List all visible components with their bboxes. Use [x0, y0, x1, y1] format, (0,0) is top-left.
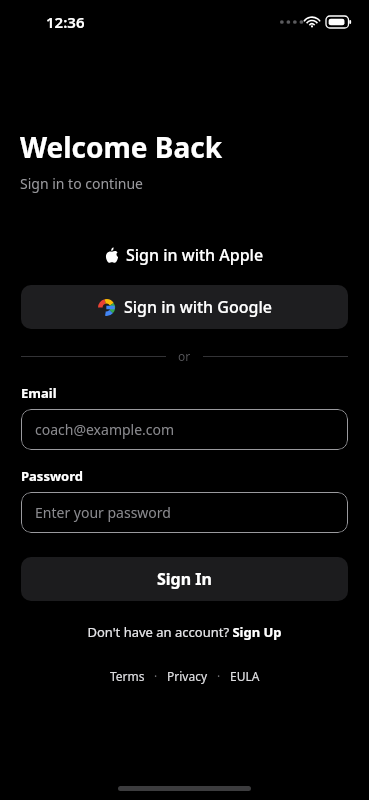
staticText: coach@example.com	[35, 420, 175, 439]
button[interactable]: Privacy	[165, 668, 210, 684]
button[interactable]: Enter your password	[21, 492, 348, 533]
staticText: Privacy	[167, 668, 208, 684]
staticText: Welcome Back	[20, 128, 223, 166]
staticText: Sign In	[157, 568, 212, 590]
button[interactable]: coach@example.com	[21, 409, 348, 450]
button[interactable]: Sign in with Google	[21, 285, 348, 329]
staticText: EULA	[230, 668, 260, 684]
staticText: Sign in with Apple	[126, 244, 264, 266]
button[interactable]: EULA	[228, 668, 262, 684]
staticText: Password	[21, 467, 83, 485]
staticText: Terms	[110, 668, 145, 684]
staticText: or	[178, 348, 191, 364]
button[interactable]: Sign In	[21, 557, 348, 601]
button[interactable]: Sign in with Apple	[21, 233, 348, 277]
button[interactable]: Don't have an account? Sign Up	[0, 623, 369, 641]
staticText: 12:36	[46, 12, 85, 32]
staticText: Don't have an account? Sign Up	[87, 623, 282, 641]
staticText: ·	[217, 668, 221, 684]
staticText: ·	[154, 668, 158, 684]
staticText: Email	[21, 384, 57, 402]
staticText: Enter your password	[35, 503, 171, 522]
staticText: Sign in with Google	[124, 296, 272, 318]
staticText: Sign in to continue	[20, 174, 143, 193]
button[interactable]: Terms	[108, 668, 147, 684]
